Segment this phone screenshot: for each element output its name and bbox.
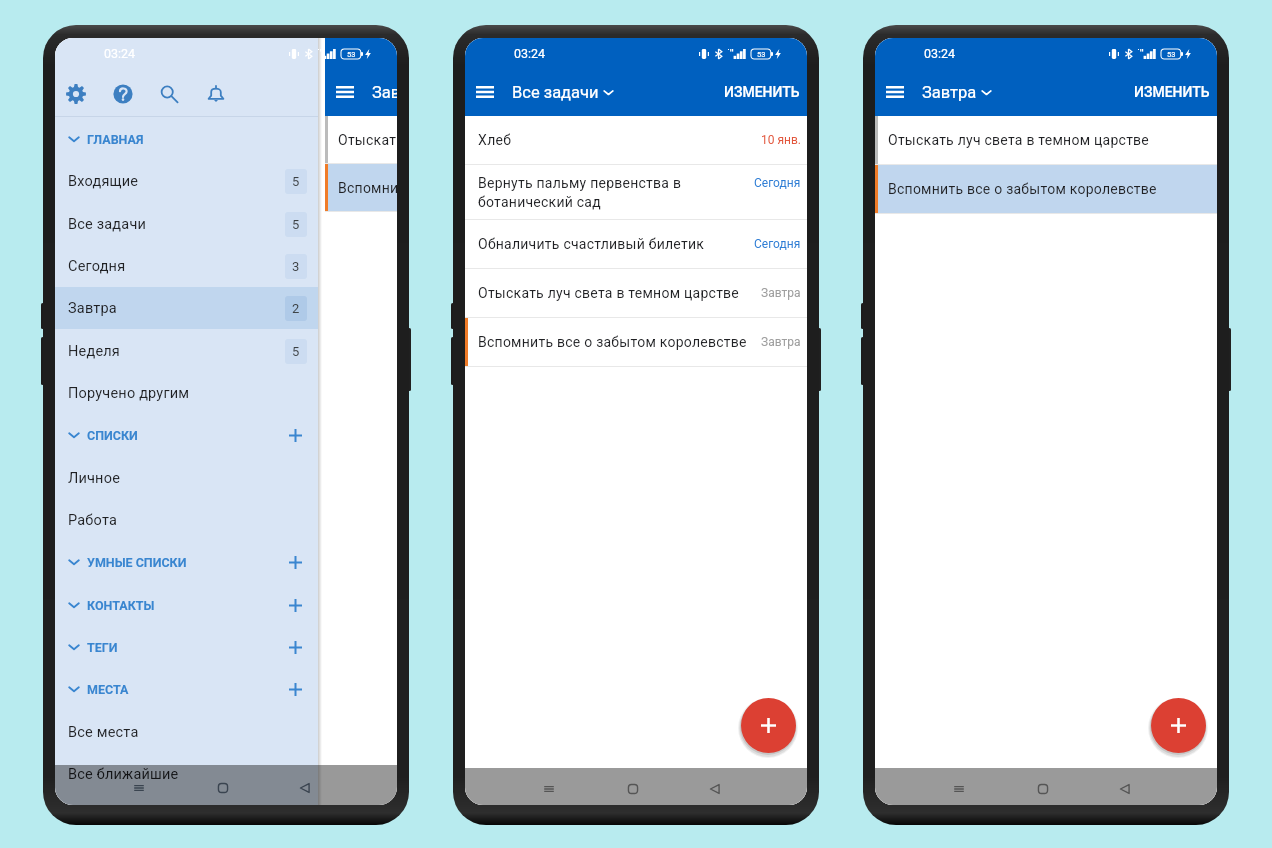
staticText: Отыскать луч света в темном царстве <box>888 132 1217 148</box>
staticText: Хлеб <box>478 132 755 148</box>
button[interactable]: Add КОНТАКТЫ <box>280 590 310 620</box>
staticText: 2 <box>292 301 300 316</box>
staticText: Все места <box>68 724 139 741</box>
button[interactable]: Вспомнить все о забытом королевстве <box>875 165 1217 213</box>
staticText: МЕСТА <box>87 682 129 697</box>
staticText: Сегодня <box>68 258 126 275</box>
button[interactable]: УМНЫЕ СПИСКИ <box>55 541 318 583</box>
button[interactable]: Сегодня <box>55 245 318 287</box>
button[interactable]: Home <box>204 765 242 805</box>
button[interactable]: Notifications <box>194 72 238 116</box>
button[interactable]: Хлеб <box>465 116 807 164</box>
staticText: Завтра <box>761 286 801 300</box>
button[interactable]: КОНТАКТЫ <box>55 584 318 626</box>
staticText: Завтра <box>761 335 801 349</box>
staticText: 53 <box>1167 50 1176 59</box>
button[interactable]: Неделя <box>55 330 318 372</box>
staticText: ИЗМЕНИТЬ <box>724 84 800 100</box>
staticText: ТЕГИ <box>87 640 118 655</box>
staticText: 03:24 <box>104 46 136 61</box>
button[interactable]: Back <box>286 765 324 805</box>
staticText: Отыскать луч света в темном царстве <box>478 285 755 301</box>
button[interactable]: ИЗМЕНИТЬ <box>717 74 807 110</box>
staticText: 5 <box>292 217 300 232</box>
staticText: 5 <box>292 174 300 189</box>
button[interactable]: Вернуть пальму первенства в ботанический… <box>465 165 807 219</box>
staticText: Сегодня <box>754 176 801 190</box>
staticText: Вспомнить все о забытом королевстве <box>338 180 397 196</box>
button[interactable]: Завтра <box>922 83 998 102</box>
button[interactable]: Завтра <box>55 287 318 329</box>
staticText: Завтра <box>68 300 117 317</box>
staticText: 53 <box>347 50 356 59</box>
staticText: Личное <box>68 470 121 487</box>
button[interactable]: Home <box>1024 768 1062 805</box>
staticText: Неделя <box>68 343 121 360</box>
staticText: Вспомнить все о забытом королевстве <box>478 334 755 350</box>
button[interactable]: Поручено другим <box>55 372 318 414</box>
button[interactable]: Back <box>1106 768 1144 805</box>
button[interactable]: Open navigation drawer <box>325 70 364 114</box>
button[interactable]: Вспомнить все о забытом королевстве <box>325 164 397 211</box>
button[interactable]: Все места <box>55 711 318 753</box>
button[interactable]: Add СПИСКИ <box>280 420 310 450</box>
staticText: УМНЫЕ СПИСКИ <box>87 555 187 570</box>
staticText: Все ближайшие <box>68 766 179 783</box>
button[interactable]: Recents <box>530 768 568 805</box>
staticText: Работа <box>68 512 118 529</box>
staticText: 5 <box>292 344 300 359</box>
button[interactable]: Settings <box>55 72 98 116</box>
staticText: Поручено другим <box>68 385 190 402</box>
button[interactable]: Отыскать луч света в темном царстве <box>875 116 1217 164</box>
staticText: Сегодня <box>754 237 801 251</box>
button[interactable]: Open navigation drawer <box>465 70 504 114</box>
button[interactable]: Все задачи <box>512 83 620 102</box>
staticText: Вспомнить все о забытом королевстве <box>888 181 1217 197</box>
button[interactable]: Личное <box>55 457 318 499</box>
staticText: 53 <box>757 50 766 59</box>
button[interactable]: СПИСКИ <box>55 414 318 456</box>
staticText: Завтра <box>372 83 397 102</box>
staticText: СПИСКИ <box>87 428 138 443</box>
staticText: 03:24 <box>924 46 956 61</box>
button[interactable]: Back <box>696 768 734 805</box>
staticText: Обналичить счастливый билетик <box>478 236 748 252</box>
button[interactable]: Отыскать луч света в темном царстве <box>325 116 397 163</box>
button[interactable]: Отыскать луч света в темном царстве <box>465 269 807 317</box>
button[interactable]: Все ближайшие <box>55 753 318 795</box>
staticText: Завтра <box>922 83 977 102</box>
button[interactable]: ТЕГИ <box>55 626 318 668</box>
button[interactable]: ГЛАВНАЯ <box>55 118 318 160</box>
button[interactable]: Add ТЕГИ <box>280 632 310 662</box>
staticText: Все задачи <box>68 216 147 233</box>
button[interactable]: Add task <box>741 698 796 753</box>
staticText: Все задачи <box>512 83 599 102</box>
staticText: ИЗМЕНИТЬ <box>1134 84 1210 100</box>
button[interactable]: Вспомнить все о забытом королевстве <box>465 318 807 366</box>
staticText: 03:24 <box>514 46 546 61</box>
staticText: ГЛАВНАЯ <box>87 132 144 147</box>
staticText: КОНТАКТЫ <box>87 598 155 613</box>
staticText: 3 <box>292 259 300 274</box>
button[interactable]: Работа <box>55 499 318 541</box>
staticText: Вернуть пальму первенства в ботанический… <box>478 175 748 210</box>
button[interactable]: МЕСТА <box>55 668 318 710</box>
button[interactable]: Help <box>101 72 145 116</box>
staticText: Отыскать луч света в темном царстве <box>338 132 397 148</box>
button[interactable]: Add task <box>1151 698 1206 753</box>
button[interactable]: Add МЕСТА <box>280 674 310 704</box>
button[interactable]: Recents <box>940 768 978 805</box>
button[interactable]: Open navigation drawer <box>875 70 914 114</box>
button[interactable]: Recents <box>120 765 158 805</box>
button[interactable]: Add УМНЫЕ СПИСКИ <box>280 547 310 577</box>
button[interactable]: Search <box>147 72 191 116</box>
button[interactable]: Home <box>614 768 652 805</box>
button[interactable]: Обналичить счастливый билетик <box>465 220 807 268</box>
button[interactable]: Входящие <box>55 160 318 202</box>
staticText: 10 янв. <box>761 133 801 147</box>
staticText: Входящие <box>68 173 139 190</box>
button[interactable]: ИЗМЕНИТЬ <box>1127 74 1217 110</box>
button[interactable]: Все задачи <box>55 203 318 245</box>
